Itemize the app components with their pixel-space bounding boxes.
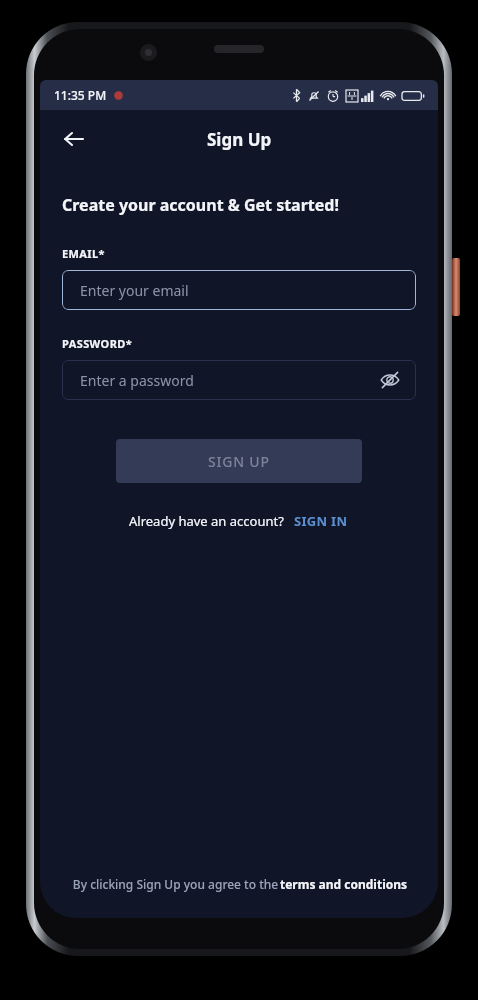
- staticText: Sign Up: [207, 128, 272, 151]
- button[interactable]: terms and conditions: [280, 876, 408, 892]
- staticText: PASSWORD*: [62, 336, 133, 351]
- button[interactable]: Enter your email: [62, 270, 416, 310]
- staticText: Enter your email: [80, 281, 189, 300]
- button[interactable]: SIGN UP: [116, 439, 362, 483]
- staticText: By clicking Sign Up you agree to the: [71, 876, 280, 892]
- button[interactable]: SIGN IN: [292, 510, 350, 532]
- staticText: EMAIL*: [62, 246, 105, 261]
- staticText: Enter a password: [80, 371, 194, 390]
- staticText: 11:35 PM: [54, 87, 107, 103]
- staticText: Already have an account?: [129, 512, 284, 530]
- staticText: SIGN UP: [208, 452, 270, 471]
- staticText: terms and conditions: [280, 876, 408, 892]
- staticText: SIGN IN: [294, 512, 348, 530]
- button[interactable]: Back: [52, 117, 96, 161]
- button[interactable]: Show password: [378, 368, 402, 392]
- button[interactable]: Enter a password: [62, 360, 416, 400]
- staticText: Create your account & Get started!: [62, 194, 339, 216]
